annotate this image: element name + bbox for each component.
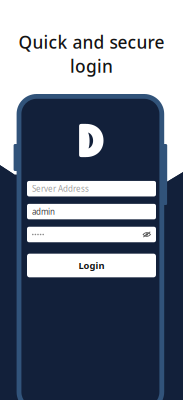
staticText: login bbox=[70, 54, 113, 77]
button[interactable]: Password bbox=[27, 227, 156, 242]
button[interactable]: admin bbox=[27, 204, 156, 219]
staticText: Server Address bbox=[32, 183, 89, 194]
button[interactable]: Server Address bbox=[27, 181, 156, 196]
staticText: Quick and secure bbox=[18, 30, 164, 53]
staticText: Login bbox=[78, 259, 104, 272]
staticText: admin bbox=[32, 206, 55, 217]
button[interactable]: Login bbox=[27, 254, 156, 277]
